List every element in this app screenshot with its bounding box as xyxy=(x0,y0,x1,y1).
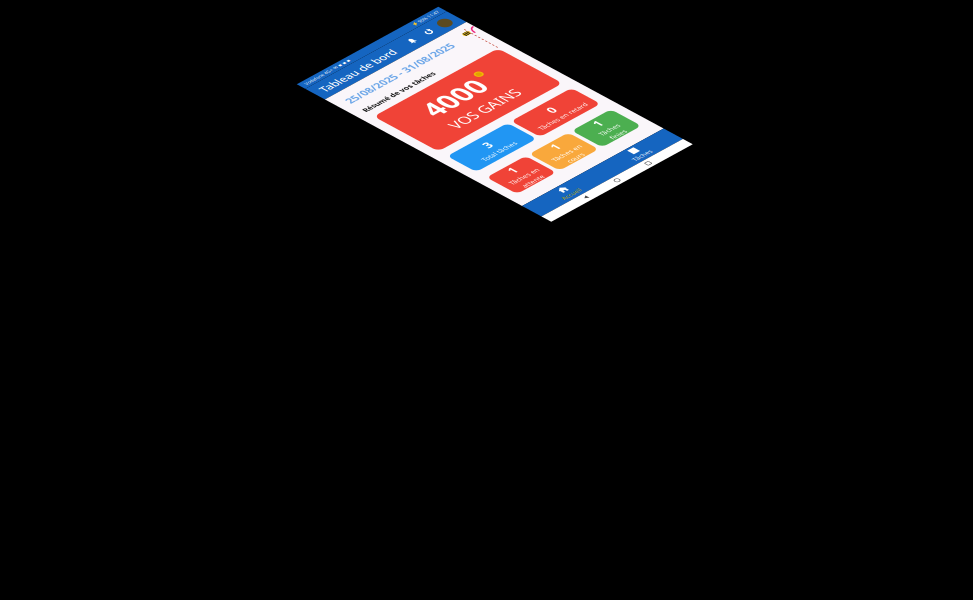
button[interactable]: Actualiser xyxy=(316,37,346,67)
button[interactable]: Profil xyxy=(362,36,394,68)
staticText: 25/08/2025 - 31/08/2025 xyxy=(25,101,332,136)
